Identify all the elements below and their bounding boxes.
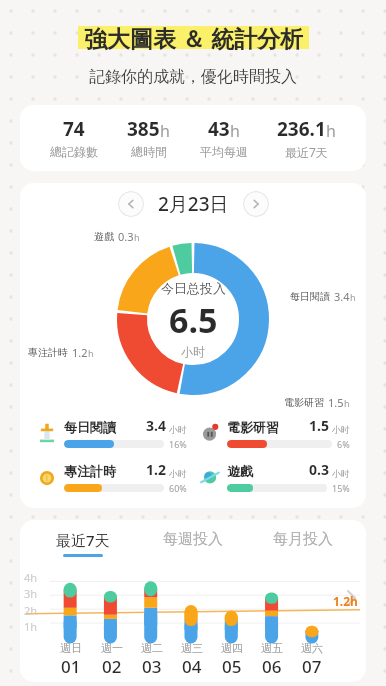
staticText: h (160, 120, 170, 142)
staticText: 1.2 (72, 345, 88, 360)
staticText: 週三 (181, 641, 203, 655)
button[interactable]: 每月投入 (248, 530, 358, 556)
staticText: 電影研習 (284, 396, 324, 409)
staticText: 03 (142, 655, 162, 678)
staticText: 小时 (169, 468, 187, 479)
button[interactable]: 遊戲 (86, 225, 148, 248)
button[interactable]: 電影研習 (199, 416, 350, 450)
button[interactable]: 最近7天 (28, 530, 138, 557)
staticText: 04 (182, 655, 202, 678)
staticText: 0.3 (118, 229, 134, 244)
staticText: 週五 (261, 641, 283, 655)
staticText: 小时 (181, 344, 205, 359)
staticText: 強大圖表 ＆ 統計分析 (84, 22, 303, 53)
staticText: 週日 (60, 641, 82, 655)
button[interactable]: 電影研習 (276, 391, 358, 414)
staticText: 最近7天 (285, 144, 328, 160)
staticText: 每月投入 (273, 530, 333, 549)
staticText: 3h (24, 586, 38, 601)
staticText: 1.5 (328, 395, 344, 410)
button[interactable]: Next day (243, 191, 269, 217)
button[interactable]: 每週投入 (138, 530, 248, 556)
staticText: 電影研習 (227, 419, 279, 435)
staticText: 05 (222, 655, 242, 678)
staticText: 週六 (301, 641, 323, 655)
staticText: h (350, 291, 356, 303)
staticText: 02 (102, 655, 122, 678)
button[interactable]: 每日閱讀 (282, 285, 364, 308)
staticText: 小时 (332, 424, 350, 435)
staticText: 遊戲 (94, 230, 114, 243)
staticText: 1.2 (146, 460, 166, 479)
staticText: 最近7天 (56, 530, 110, 550)
staticText: 遊戲 (227, 463, 253, 479)
staticText: 3.4 (334, 289, 350, 304)
staticText: 週四 (221, 641, 243, 655)
staticText: 小时 (332, 468, 350, 479)
staticText: 週二 (141, 641, 163, 655)
staticText: 74 (63, 116, 85, 142)
staticText: 43 (208, 116, 230, 142)
staticText: 01 (61, 655, 81, 678)
button[interactable]: 每日閱讀 (36, 416, 187, 450)
staticText: 6.5 (169, 297, 218, 343)
staticText: 專注計時 (64, 463, 116, 479)
staticText: 60% (169, 482, 187, 494)
staticText: 1.2h (333, 593, 358, 609)
staticText: h (344, 397, 350, 409)
staticText: 6% (337, 438, 350, 450)
button[interactable]: Previous day (118, 191, 144, 217)
button[interactable]: 遊戲 (199, 460, 350, 494)
staticText: h (230, 120, 240, 142)
staticText: 07 (302, 655, 322, 678)
staticText: 2h (24, 603, 38, 618)
staticText: 16% (169, 438, 187, 450)
staticText: 2月23日 (158, 191, 229, 217)
staticText: 每日閱讀 (290, 290, 330, 303)
staticText: h (326, 120, 336, 142)
staticText: h (134, 231, 140, 243)
staticText: 0.3 (309, 460, 329, 479)
staticText: 總時間 (131, 144, 167, 159)
staticText: 1.5 (309, 416, 329, 435)
staticText: 今日总投入 (161, 280, 226, 296)
staticText: 專注計時 (28, 346, 68, 359)
staticText: 4h (24, 570, 38, 585)
staticText: 每週投入 (163, 530, 223, 549)
button[interactable]: 專注計時 (20, 341, 102, 364)
staticText: 週一 (101, 641, 123, 655)
staticText: 385 (127, 116, 160, 142)
button[interactable]: 專注計時 (36, 460, 187, 494)
staticText: 平均每週 (200, 144, 248, 159)
staticText: 236.1 (277, 116, 326, 142)
staticText: 3.4 (146, 416, 166, 435)
staticText: 總記錄數 (50, 144, 98, 159)
staticText: 記錄你的成就，優化時間投入 (89, 67, 297, 87)
staticText: 1h (24, 619, 38, 634)
staticText: 15% (332, 482, 350, 494)
staticText: h (88, 347, 94, 359)
staticText: 小时 (169, 424, 187, 435)
staticText: 06 (262, 655, 282, 678)
staticText: 每日閱讀 (64, 419, 116, 435)
